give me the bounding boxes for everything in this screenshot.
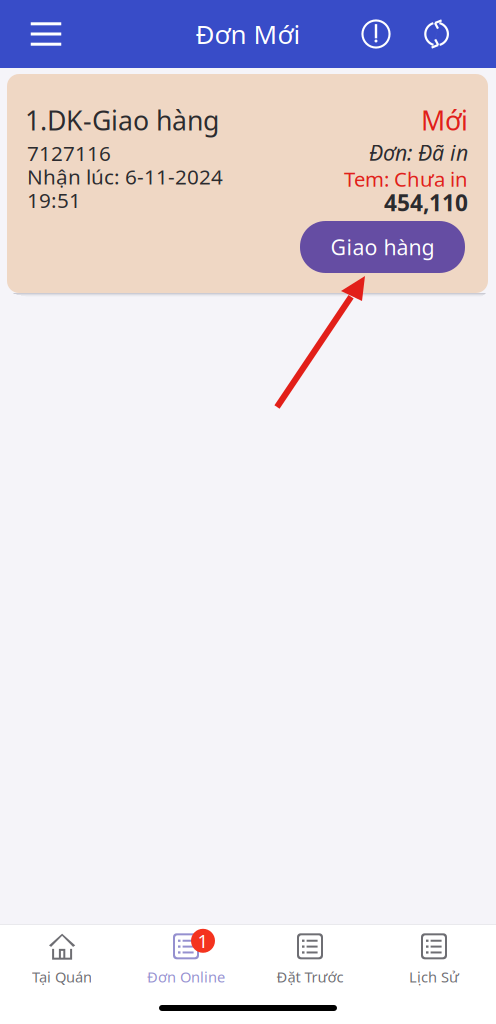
button[interactable]: Giao hàng: [300, 221, 465, 273]
button[interactable]: Menu: [15, 0, 77, 68]
staticText: Mới: [421, 102, 468, 138]
button[interactable]: Refresh: [404, 0, 468, 68]
button[interactable]: Tại Quán: [0, 925, 124, 996]
staticText: Lịch Sử: [409, 967, 459, 987]
staticText: 1: [197, 928, 208, 953]
staticText: 1.DK-Giao hàng: [25, 102, 219, 138]
button[interactable]: 1: [124, 925, 248, 996]
staticText: Đơn Online: [147, 967, 225, 987]
button[interactable]: Lịch Sử: [372, 925, 496, 996]
staticText: Đặt Trước: [276, 967, 343, 987]
button[interactable]: Đặt Trước: [248, 925, 372, 996]
button[interactable]: Information: [348, 0, 404, 68]
staticText: 19:51: [27, 186, 81, 214]
staticText: Tại Quán: [32, 967, 92, 987]
staticText: Tem: Chưa in: [344, 165, 468, 193]
staticText: Nhận lúc: 6-11-2024: [27, 162, 223, 191]
staticText: Giao hàng: [330, 232, 434, 262]
staticText: 454,110: [384, 187, 468, 218]
staticText: Đơn: Đã in: [369, 138, 468, 167]
staticText: 7127116: [27, 139, 111, 167]
staticText: Đơn Mới: [195, 16, 300, 52]
